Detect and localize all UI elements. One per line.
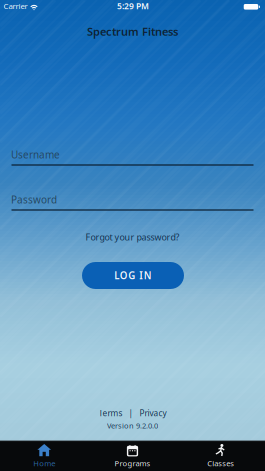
staticText: Spectrum Fitness: [87, 24, 178, 39]
button[interactable]: Home: [0, 441, 88, 471]
button[interactable]: LOG IN: [82, 262, 184, 289]
staticText: Privacy: [139, 407, 166, 419]
staticText: LOG IN: [114, 269, 152, 282]
button[interactable]: Privacy: [139, 407, 166, 419]
staticText: Home: [33, 458, 55, 468]
staticText: Version 9.2.0.0: [107, 420, 158, 431]
staticText: Classes: [207, 458, 234, 468]
staticText: Password: [11, 193, 57, 206]
staticText: Programs: [114, 458, 150, 468]
button[interactable]: Terms: [98, 407, 122, 419]
staticText: 5:29 PM: [117, 0, 149, 12]
button[interactable]: Forgot your password?: [85, 231, 179, 243]
staticText: Terms: [98, 407, 122, 419]
staticText: Forgot your password?: [85, 231, 179, 243]
staticText: Carrier: [3, 1, 27, 11]
staticText: |: [128, 407, 133, 419]
staticText: Username: [11, 148, 60, 161]
button[interactable]: Programs: [88, 441, 176, 471]
button[interactable]: Classes: [177, 441, 265, 471]
